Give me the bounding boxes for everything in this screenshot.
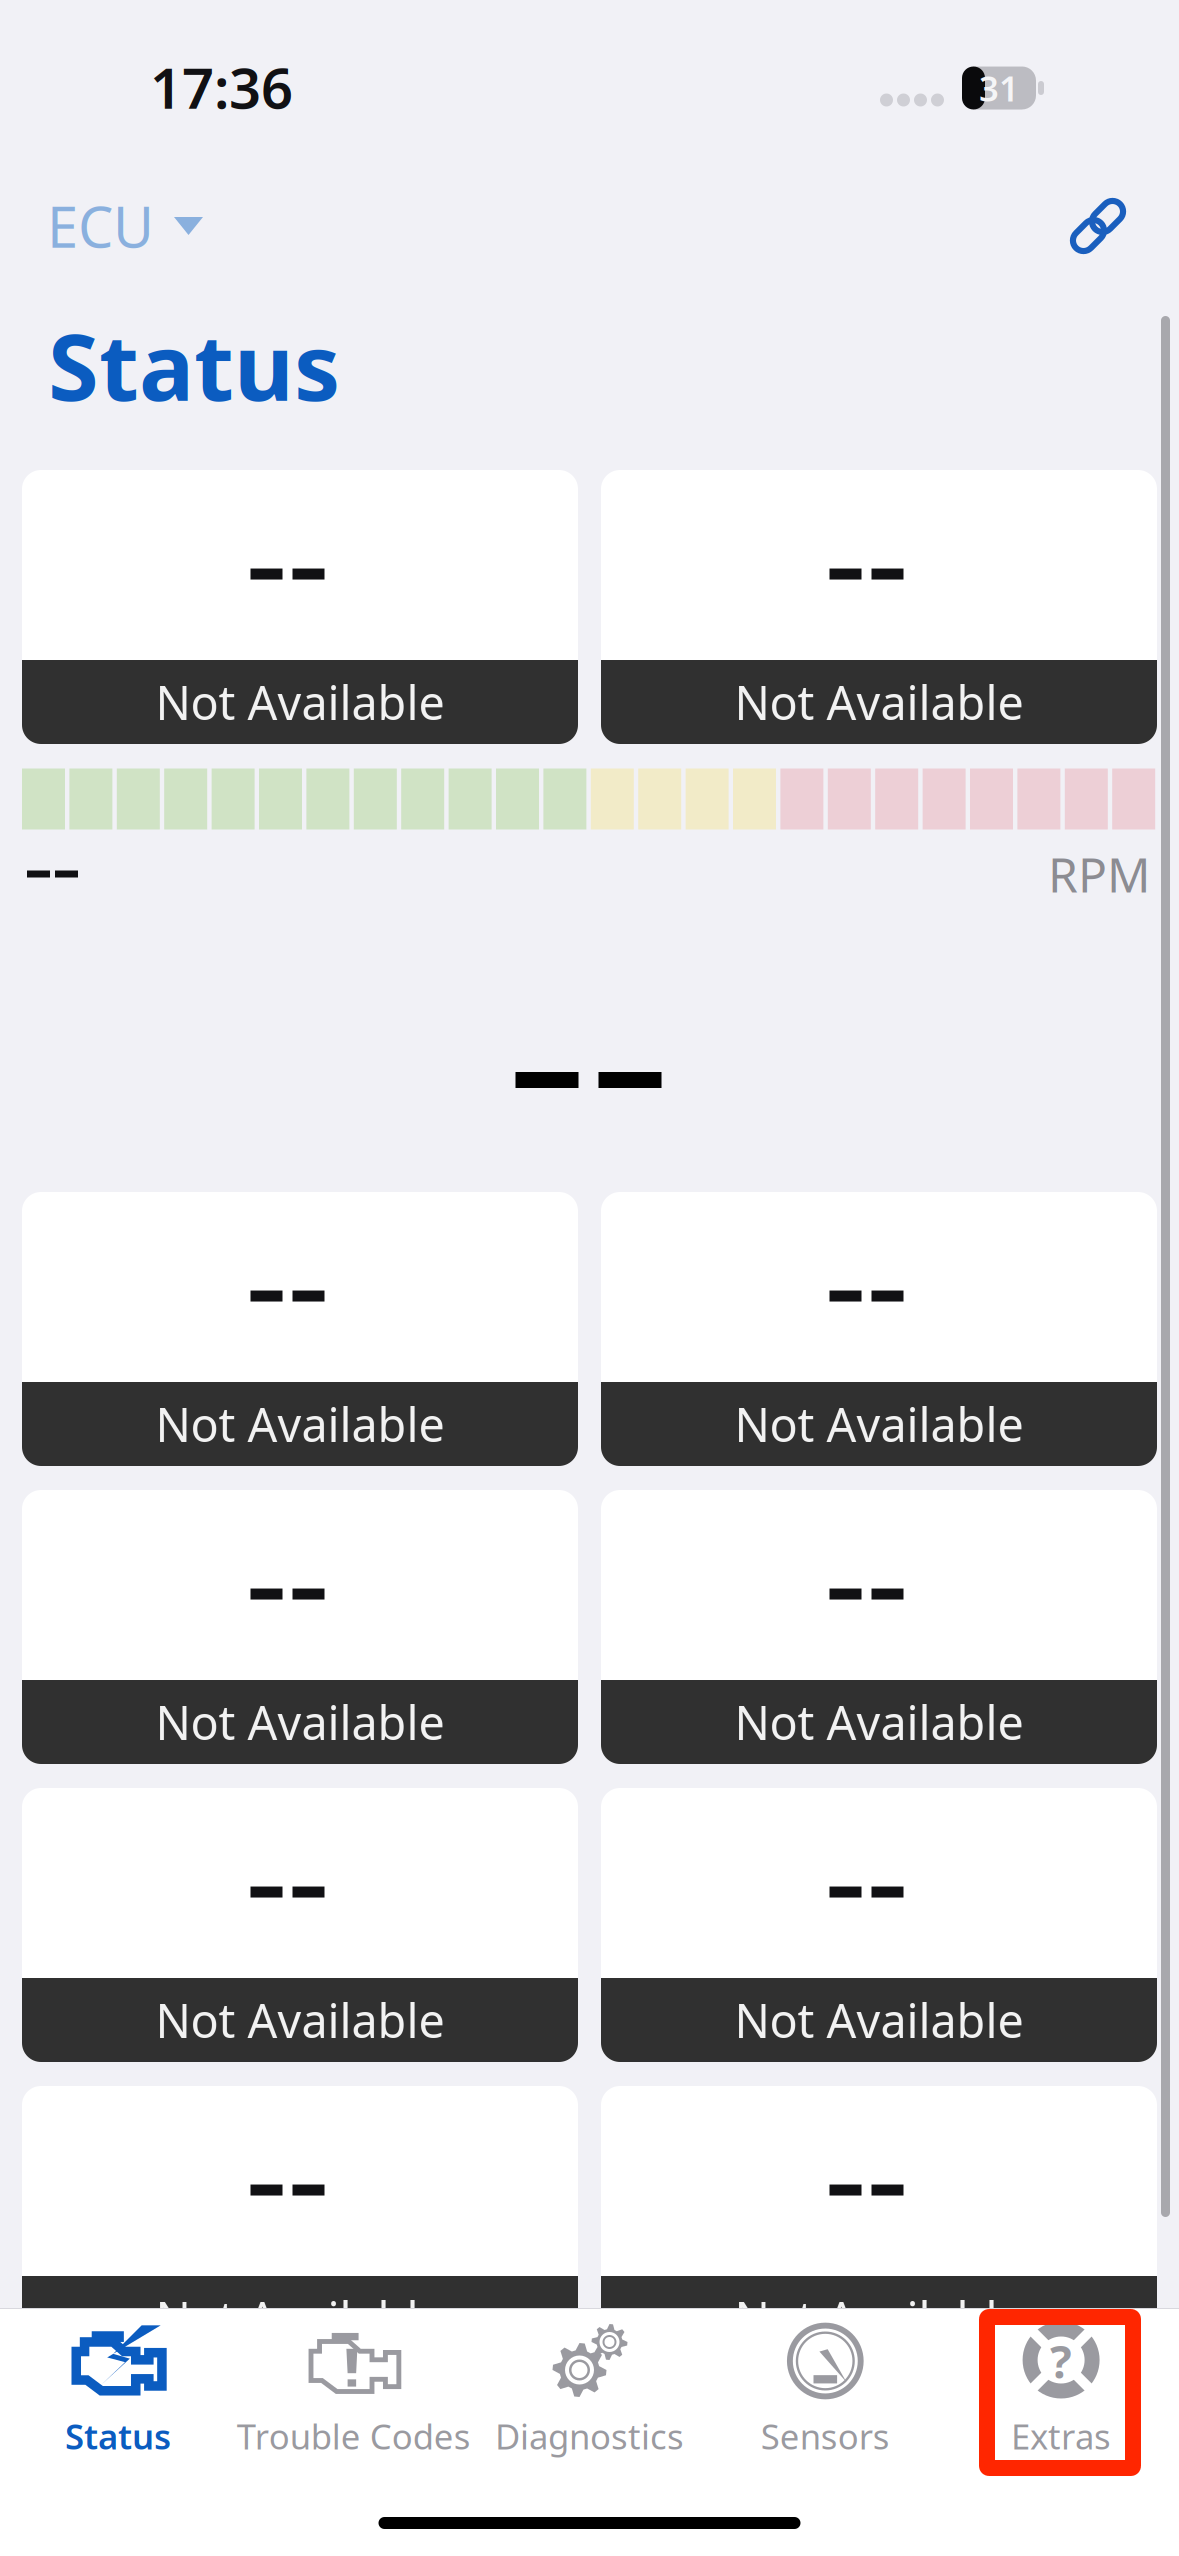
staticText: Extras: [1011, 2413, 1111, 2459]
staticText: Not Available: [155, 1691, 444, 1753]
button[interactable]: ECU: [41, 163, 209, 289]
button[interactable]: Not Available: [601, 1788, 1157, 2062]
staticText: Sensors: [761, 2413, 890, 2459]
button[interactable]: ?: [943, 2309, 1179, 2477]
button[interactable]: Diagnostics: [472, 2309, 707, 2477]
staticText: Not Available: [155, 671, 444, 733]
staticText: Not Available: [155, 1393, 444, 1455]
staticText: Not Available: [734, 1691, 1023, 1753]
button[interactable]: Status: [0, 2309, 236, 2477]
staticText: Diagnostics: [495, 2413, 684, 2459]
staticText: ECU: [47, 189, 154, 263]
button[interactable]: Connect: [1055, 183, 1141, 269]
button[interactable]: Not Available: [601, 1192, 1157, 1466]
button[interactable]: Not Available: [22, 470, 578, 744]
staticText: Not Available: [734, 671, 1023, 733]
button[interactable]: Not Available: [22, 1788, 578, 2062]
staticText: ?: [1050, 2331, 1072, 2391]
staticText: 31: [979, 65, 1019, 111]
staticText: Not Available: [734, 1989, 1023, 2051]
staticText: Status: [65, 2413, 171, 2459]
staticText: Not Available: [155, 2287, 444, 2349]
staticText: RPM: [1048, 842, 1151, 906]
button[interactable]: Not Available: [22, 2086, 578, 2360]
staticText: Trouble Codes: [237, 2413, 471, 2459]
button[interactable]: Trouble Codes: [236, 2309, 472, 2477]
button[interactable]: Sensors: [707, 2309, 943, 2477]
staticText: Status: [48, 304, 340, 426]
button[interactable]: Not Available: [601, 2086, 1157, 2360]
button[interactable]: Not Available: [22, 1192, 578, 1466]
staticText: 17:36: [150, 50, 293, 124]
staticText: Not Available: [155, 1989, 444, 2051]
button[interactable]: Not Available: [22, 1490, 578, 1764]
staticText: Not Available: [734, 2287, 1023, 2349]
button[interactable]: Not Available: [601, 1490, 1157, 1764]
button[interactable]: Not Available: [601, 470, 1157, 744]
staticText: Not Available: [734, 1393, 1023, 1455]
